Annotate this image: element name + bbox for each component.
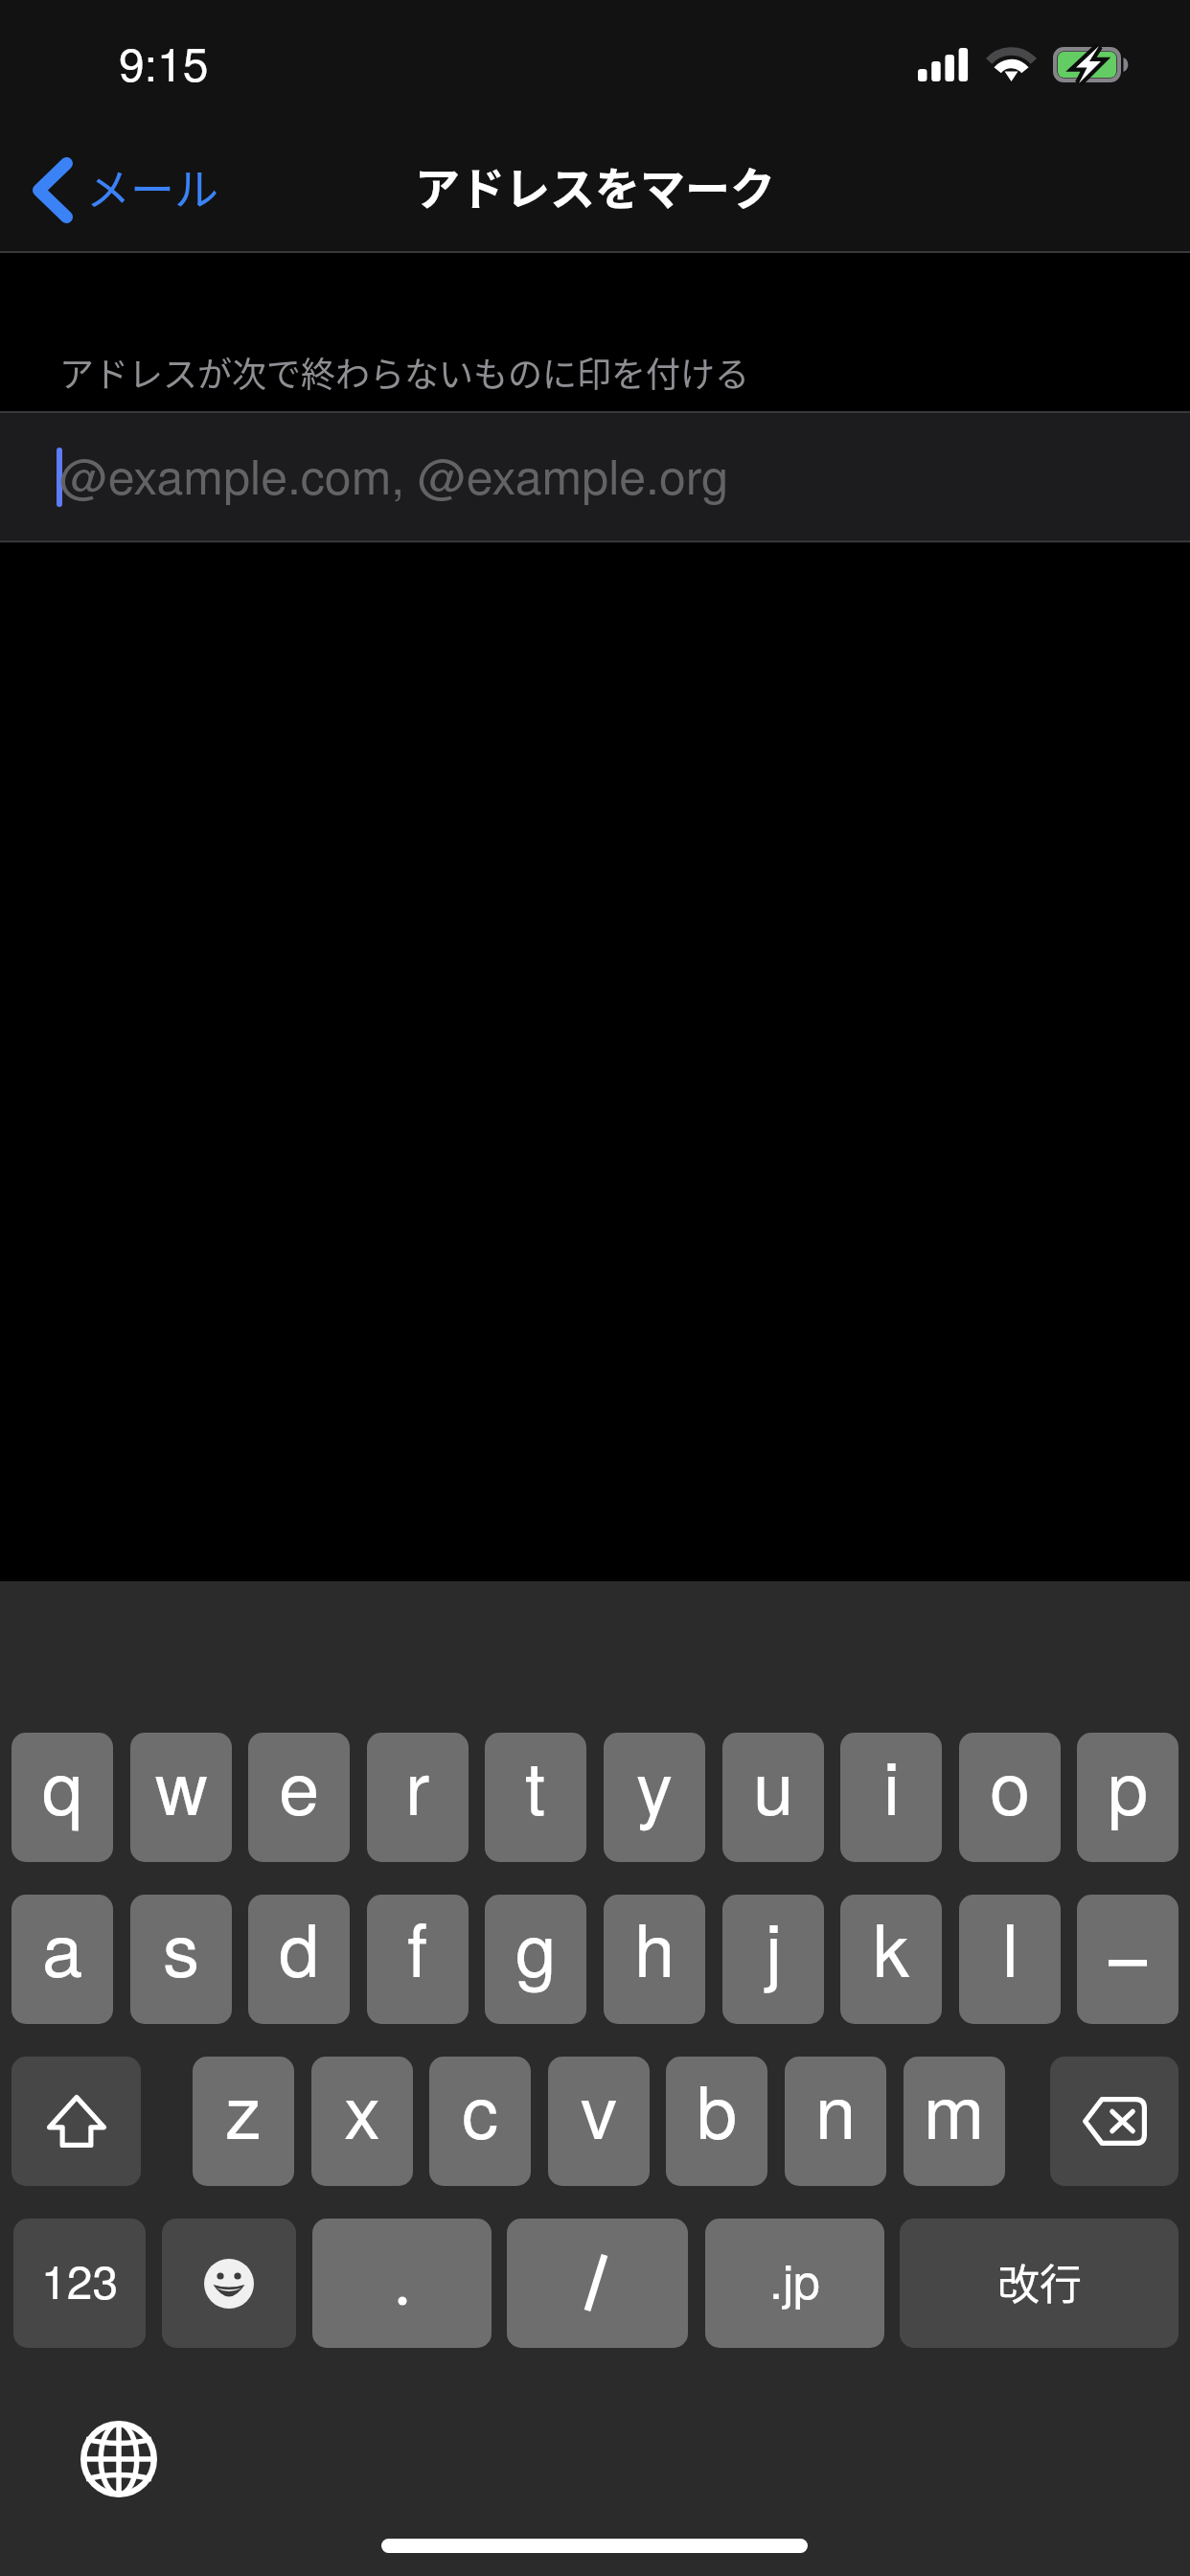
button[interactable]: Shift bbox=[11, 2057, 141, 2186]
button[interactable]: d bbox=[248, 1895, 350, 2024]
button[interactable]: l bbox=[959, 1895, 1061, 2024]
staticText: y bbox=[636, 1733, 673, 1836]
button[interactable]: y bbox=[604, 1733, 705, 1862]
staticText: a bbox=[42, 1895, 83, 1998]
button[interactable]: Backspace bbox=[1050, 2057, 1179, 2186]
staticText: z bbox=[225, 2057, 262, 2160]
button[interactable]: c bbox=[429, 2057, 531, 2186]
staticText: s bbox=[163, 1895, 199, 1998]
button[interactable]: m bbox=[904, 2057, 1005, 2186]
staticText: p bbox=[1108, 1733, 1149, 1836]
staticText: .jp bbox=[769, 2244, 820, 2313]
staticText: t bbox=[525, 1733, 546, 1836]
button[interactable]: 123 bbox=[13, 2219, 146, 2348]
button[interactable]: j bbox=[722, 1895, 824, 2024]
staticText: j bbox=[766, 1895, 782, 1998]
staticText: i bbox=[883, 1733, 900, 1836]
staticText: x bbox=[344, 2057, 380, 2160]
button[interactable]: r bbox=[367, 1733, 469, 1862]
staticText: h bbox=[634, 1895, 675, 1998]
button[interactable]: z bbox=[193, 2057, 294, 2186]
button[interactable]: g bbox=[485, 1895, 586, 2024]
staticText: k bbox=[873, 1895, 909, 1998]
staticText: 改行 bbox=[997, 2251, 1082, 2312]
staticText: q bbox=[42, 1733, 83, 1836]
button[interactable]: 改行 bbox=[900, 2219, 1179, 2348]
button[interactable]: Slash bbox=[507, 2219, 688, 2348]
staticText: @example.com, @example.org bbox=[59, 440, 728, 509]
staticText: d bbox=[279, 1895, 320, 1998]
button[interactable]: k bbox=[840, 1895, 942, 2024]
button[interactable]: b bbox=[666, 2057, 767, 2186]
button[interactable]: Change keyboard bbox=[80, 2421, 157, 2497]
staticText: メール bbox=[86, 154, 218, 218]
button[interactable]: v bbox=[548, 2057, 650, 2186]
button[interactable]: n bbox=[785, 2057, 886, 2186]
staticText: c bbox=[462, 2057, 498, 2160]
staticText: アドレスをマーク bbox=[415, 152, 775, 218]
button[interactable]: u bbox=[722, 1733, 824, 1862]
staticText: v bbox=[581, 2057, 617, 2160]
staticText: 9:15 bbox=[119, 29, 209, 95]
button[interactable]: a bbox=[11, 1895, 113, 2024]
button[interactable]: s bbox=[130, 1895, 232, 2024]
button[interactable]: e bbox=[248, 1733, 350, 1862]
button[interactable]: p bbox=[1077, 1733, 1179, 1862]
staticText: n bbox=[815, 2057, 857, 2160]
staticText: b bbox=[697, 2057, 738, 2160]
staticText: o bbox=[990, 1733, 1031, 1836]
button[interactable]: f bbox=[367, 1895, 469, 2024]
staticText: w bbox=[155, 1733, 208, 1836]
button[interactable]: Period bbox=[312, 2219, 492, 2348]
button[interactable]: @example.com, @example.org bbox=[0, 413, 1190, 540]
staticText: l bbox=[1002, 1895, 1018, 1998]
staticText: e bbox=[279, 1733, 320, 1836]
button[interactable]: q bbox=[11, 1733, 113, 1862]
button[interactable]: Back to メール bbox=[0, 126, 241, 253]
staticText: u bbox=[753, 1733, 794, 1836]
button[interactable]: Underscore bbox=[1077, 1895, 1179, 2024]
button[interactable]: h bbox=[604, 1895, 705, 2024]
staticText: m bbox=[924, 2057, 985, 2160]
button[interactable]: t bbox=[485, 1733, 586, 1862]
staticText: f bbox=[407, 1895, 428, 1998]
button[interactable]: .jp bbox=[705, 2219, 884, 2348]
staticText: アドレスが次で終わらないものに印を付ける bbox=[59, 347, 750, 397]
button[interactable]: o bbox=[959, 1733, 1061, 1862]
button[interactable]: w bbox=[130, 1733, 232, 1862]
staticText: 123 bbox=[41, 2246, 119, 2312]
staticText: r bbox=[405, 1733, 430, 1836]
button[interactable]: x bbox=[311, 2057, 413, 2186]
button[interactable]: i bbox=[840, 1733, 942, 1862]
button[interactable]: Emoji bbox=[162, 2219, 296, 2348]
staticText: g bbox=[515, 1895, 557, 1998]
